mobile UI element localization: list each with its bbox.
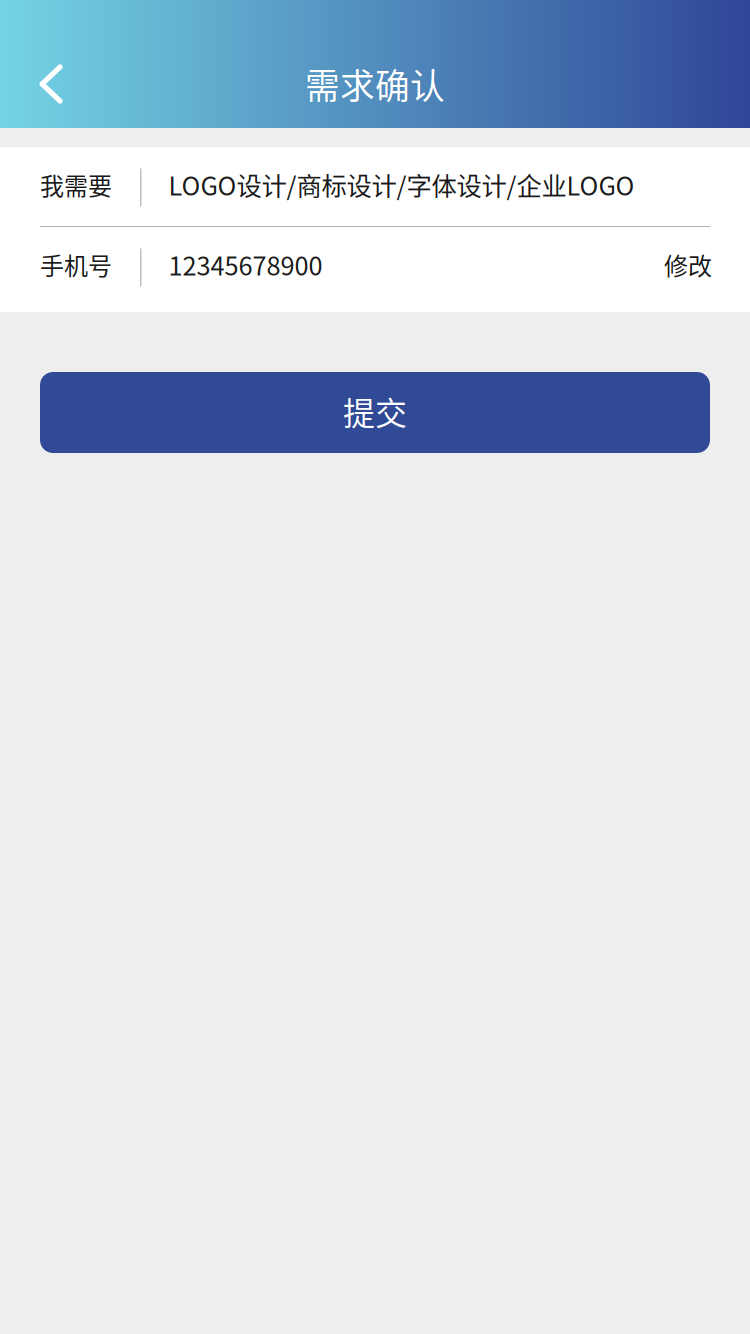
staticText: 修改 — [664, 247, 712, 282]
staticText: 需求确认 — [305, 59, 445, 109]
staticText: LOGO设计/商标设计/字体设计/企业LOGO — [168, 166, 634, 203]
staticText: 手机号 — [40, 247, 112, 282]
button[interactable]: Back — [0, 40, 102, 128]
button[interactable]: 提交 — [40, 372, 710, 453]
staticText: 提交 — [343, 388, 407, 434]
staticText: 12345678900 — [168, 246, 322, 283]
button[interactable]: 修改 — [664, 247, 712, 282]
staticText: 我需要 — [40, 167, 112, 202]
button[interactable]: 我需要 — [0, 147, 750, 226]
